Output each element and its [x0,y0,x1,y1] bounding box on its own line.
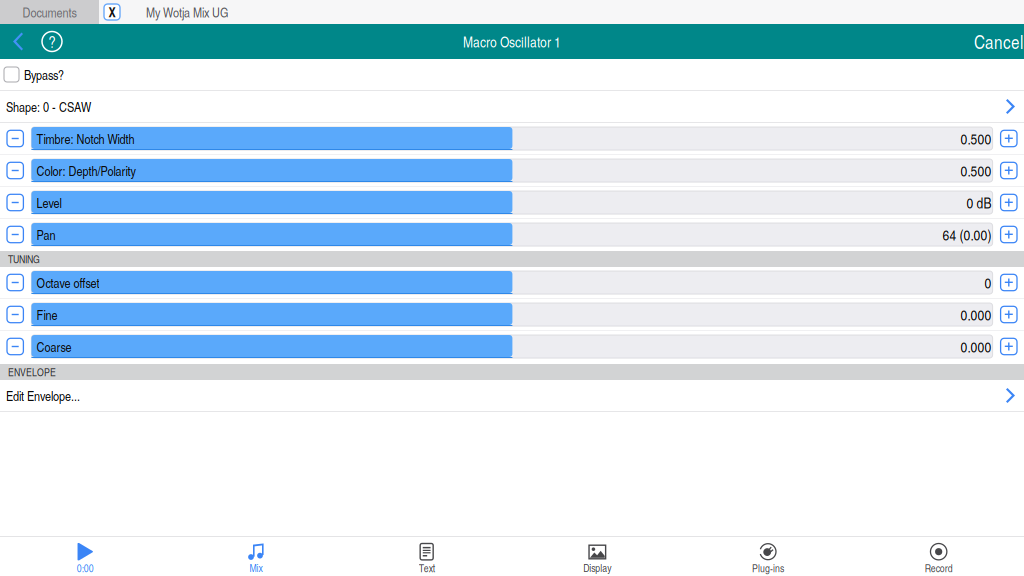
button[interactable]: Decrease [7,123,23,154]
button[interactable]: Plug-ins [683,537,853,576]
staticText: Cancel [974,29,1023,54]
staticText: X [108,3,115,21]
button[interactable]: Increase [1001,331,1017,362]
button[interactable]: Increase [1001,219,1017,250]
button[interactable]: Level [31,187,993,218]
staticText: Coarse [36,337,71,356]
staticText: Documents [22,3,76,21]
staticText: 64 (0.00) [943,224,992,244]
button[interactable]: Mix [171,537,341,576]
button[interactable]: Decrease [7,219,23,250]
staticText: Bypass? [24,65,64,84]
staticText: 0 [985,272,992,292]
staticText: Display [583,560,611,575]
button[interactable]: X [99,0,250,24]
staticText: My Wotja Mix UG [146,3,229,21]
staticText: Pan [36,225,55,244]
staticText: Timbre: Notch Width [36,129,134,148]
staticText: Macro Oscillator 1 [463,31,561,51]
staticText: Shape: 0 - CSAW [6,97,91,116]
staticText: 0 dB [967,192,992,212]
staticText: Record [925,561,953,575]
button[interactable]: Decrease [7,187,23,218]
button[interactable]: Shape: 0 - CSAW [0,91,1024,122]
button[interactable]: Record [853,537,1024,576]
button[interactable]: 0:00 [0,537,171,576]
button[interactable]: Decrease [7,299,23,330]
staticText: ? [48,30,55,52]
button[interactable]: Back [0,24,36,59]
button[interactable]: Increase [1001,123,1017,154]
button[interactable]: Coarse [31,331,993,362]
staticText: 0.500 [961,160,992,180]
button[interactable]: Help [36,24,68,59]
staticText: Level [36,193,61,212]
button[interactable]: Increase [1001,187,1017,218]
staticText: Octave offset [36,273,99,292]
button[interactable]: Documents [0,0,99,24]
staticText: 0.000 [961,304,992,324]
button[interactable]: Increase [1001,155,1017,186]
button[interactable]: Increase [1001,299,1017,330]
button[interactable]: Pan [31,219,993,250]
staticText: 0:00 [77,561,94,575]
button[interactable]: Text [341,537,512,576]
staticText: Text [419,561,435,575]
button[interactable]: Increase [1001,267,1017,298]
button[interactable]: Bypass? [0,59,1024,90]
button[interactable]: Edit Envelope... [0,380,1024,411]
staticText: ENVELOPE [8,365,56,379]
staticText: Edit Envelope... [6,386,80,405]
staticText: Plug-ins [752,561,784,575]
button[interactable]: Display [512,537,683,576]
button[interactable]: Octave offset [31,267,993,298]
staticText: TUNING [8,252,40,266]
button[interactable]: Decrease [7,267,23,298]
staticText: 0.000 [961,336,992,356]
staticText: Mix [249,560,262,575]
button[interactable]: Cancel [974,24,1024,59]
staticText: Fine [36,305,57,324]
button[interactable]: Timbre: Notch Width [31,123,993,154]
button[interactable]: Decrease [7,331,23,362]
button[interactable]: Decrease [7,155,23,186]
button[interactable]: Fine [31,299,993,330]
staticText: Color: Depth/Polarity [36,161,135,180]
button[interactable]: Color: Depth/Polarity [31,155,993,186]
staticText: 0.500 [961,128,992,148]
